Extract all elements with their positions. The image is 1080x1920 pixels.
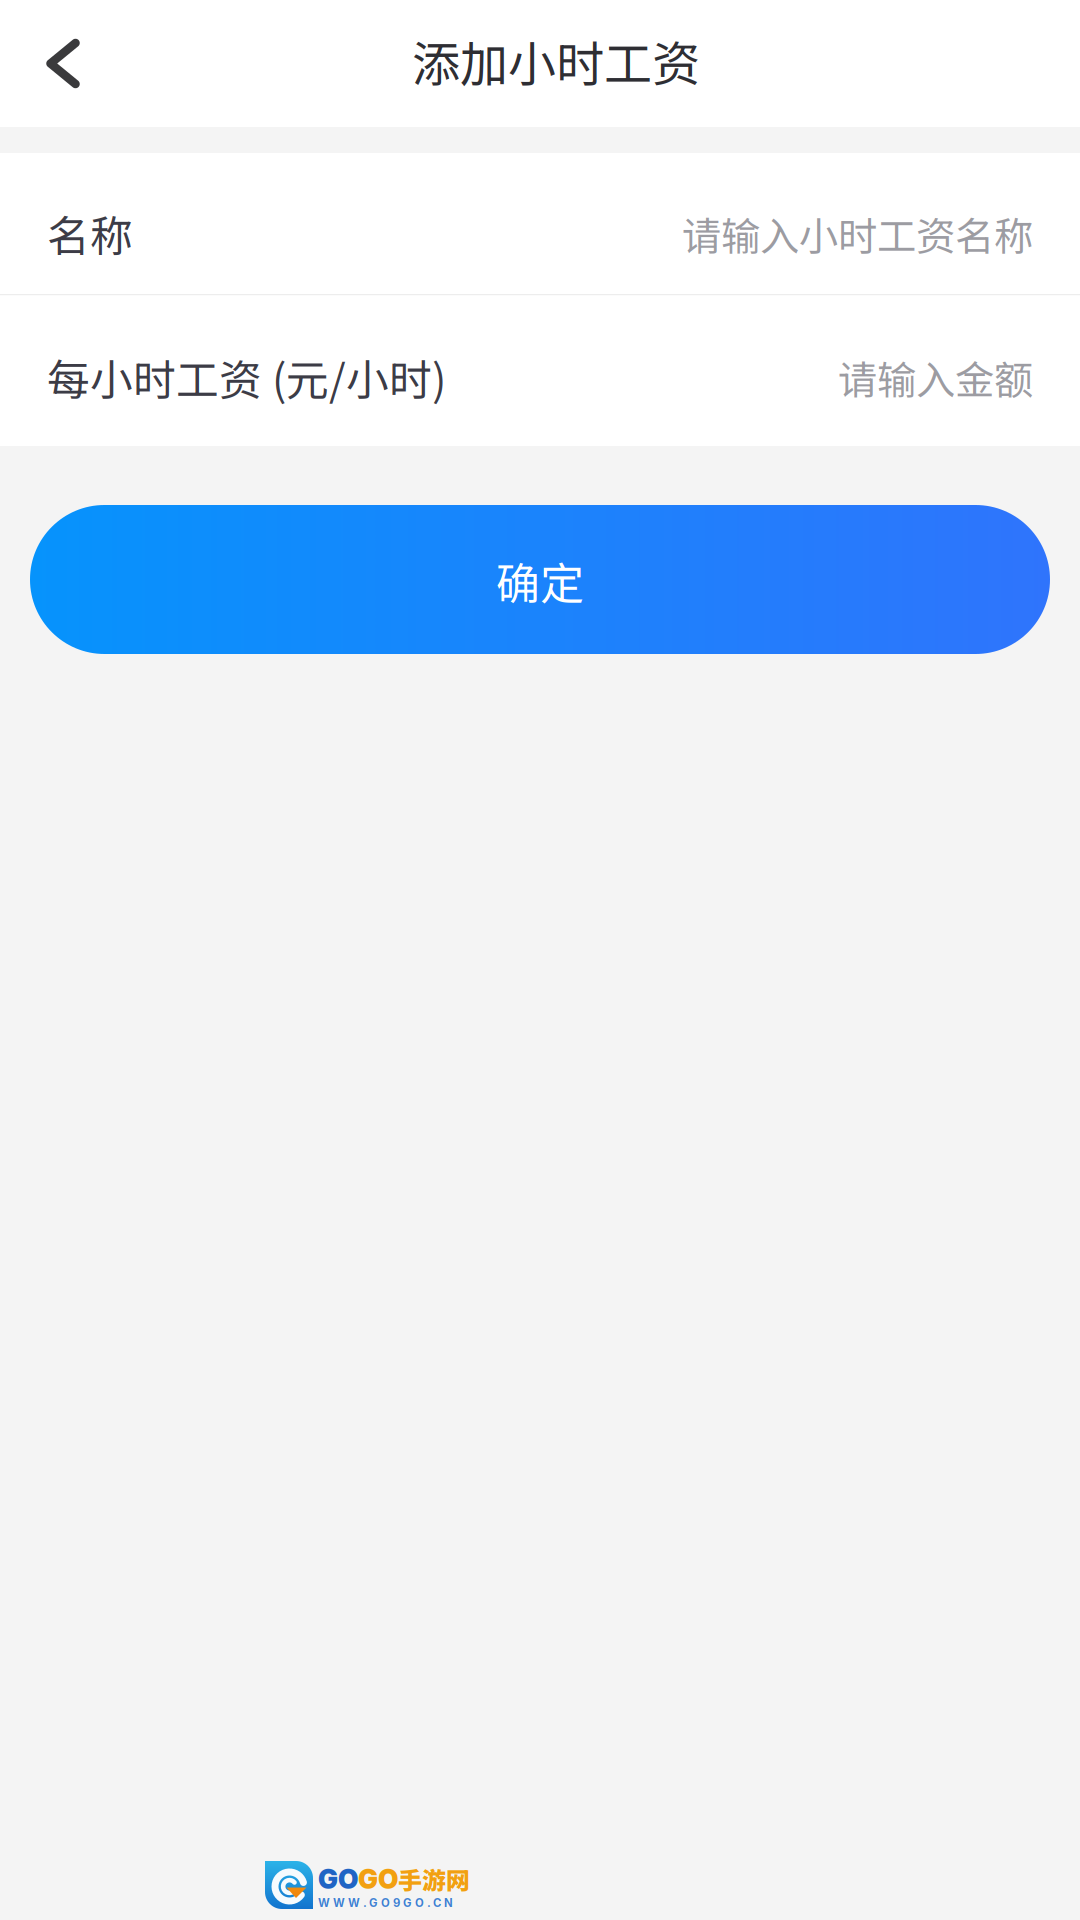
staticText: 名称 <box>47 203 133 264</box>
button[interactable]: 名称 <box>0 153 1080 294</box>
staticText: 添加小时工资 <box>412 26 700 95</box>
staticText: W W W . G O 9 G O . C N <box>318 1896 453 1910</box>
staticText: 每小时工资 (元/小时) <box>47 346 446 408</box>
staticText: GO <box>358 1863 398 1895</box>
button[interactable]: 返回 <box>0 16 110 110</box>
button[interactable]: 每小时工资 (元/小时) <box>0 295 1080 446</box>
staticText: 手游网 <box>398 1862 470 1896</box>
staticText: GO <box>318 1863 358 1895</box>
button[interactable]: 确定 <box>30 505 1050 654</box>
staticText: 请输入金额 <box>838 349 1033 406</box>
staticText: 请输入小时工资名称 <box>682 205 1033 262</box>
staticText: 确定 <box>496 549 584 612</box>
